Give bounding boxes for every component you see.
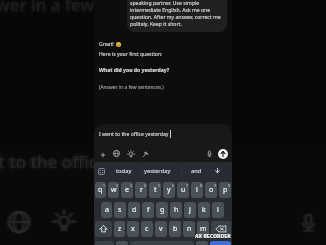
staticText: (Answer in a few sentences.) [99, 84, 164, 91]
button[interactable]: u [177, 182, 189, 198]
button[interactable]: z [114, 221, 125, 237]
button[interactable]: p [219, 182, 231, 198]
staticText: 9 [214, 183, 216, 188]
button[interactable]: and [191, 166, 202, 175]
staticText: 7 [186, 183, 188, 188]
staticText: What did you do yesterday? [99, 67, 170, 74]
button[interactable]: Send [218, 149, 228, 159]
button[interactable]: t [149, 182, 161, 198]
staticText: Here is your first question: [99, 51, 163, 58]
button[interactable]: w [108, 182, 119, 198]
staticText: 5 [158, 183, 160, 188]
button[interactable]: x [127, 221, 139, 237]
staticText: t [154, 185, 157, 195]
button[interactable]: o [205, 182, 217, 198]
staticText: 1 [103, 183, 105, 188]
staticText: I went to the office yesterday [99, 131, 169, 138]
button[interactable]: m [197, 221, 209, 237]
staticText: f [147, 205, 150, 215]
staticText: v [159, 224, 163, 234]
staticText: u [181, 185, 186, 195]
button[interactable]: s [114, 202, 126, 218]
staticText: t to the offic [0, 150, 100, 173]
button[interactable]: Attach [142, 151, 149, 158]
staticText: m [200, 224, 207, 234]
button[interactable]: l [212, 202, 224, 218]
button[interactable]: h [170, 202, 182, 218]
button[interactable]: Voice input [206, 150, 213, 157]
staticText: g [160, 205, 165, 215]
button[interactable]: Backspace [211, 221, 231, 237]
staticText: wer in a few [0, 0, 93, 16]
button[interactable]: Shift [95, 221, 112, 237]
staticText: p [223, 185, 228, 195]
button[interactable]: y [163, 182, 175, 198]
staticText: n [187, 224, 192, 234]
staticText: Great! [99, 41, 114, 48]
button[interactable]: j [184, 202, 196, 218]
staticText: 2 [116, 183, 118, 188]
staticText: d [132, 205, 137, 215]
button[interactable]: . [196, 241, 208, 245]
staticText: AX RECORDER [195, 232, 231, 239]
button[interactable]: v [155, 221, 167, 237]
button[interactable]: k [198, 202, 210, 218]
button[interactable]: yesterday [144, 166, 171, 175]
button[interactable]: Keyboard settings [98, 168, 105, 175]
staticText: q [98, 185, 103, 195]
button[interactable]: a [101, 202, 112, 218]
staticText: s [118, 205, 122, 215]
button[interactable]: Enter [210, 241, 231, 245]
staticText: k [202, 205, 206, 215]
button[interactable]: i [191, 182, 203, 198]
staticText: wer in a few [0, 0, 95, 15]
button[interactable]: today [116, 166, 132, 175]
button[interactable]: Add [100, 152, 106, 158]
staticText: 4 [144, 183, 146, 188]
staticText: t to the offic [0, 151, 98, 174]
button[interactable]: g [156, 202, 168, 218]
staticText: wer in a few [0, 0, 97, 16]
button[interactable]: Symbols [95, 241, 114, 245]
button[interactable]: e [121, 182, 133, 198]
staticText: 8 [200, 183, 202, 188]
staticText: today [116, 167, 132, 175]
staticText: t to the offic [0, 150, 98, 173]
staticText: t to the offic [0, 150, 96, 173]
button[interactable]: c [141, 221, 153, 237]
button[interactable]: n [183, 221, 195, 237]
staticText: yesterday [144, 167, 171, 175]
button[interactable]: r [135, 182, 147, 198]
staticText: a [105, 205, 109, 215]
staticText: y [167, 185, 171, 195]
staticText: 6 [172, 183, 174, 188]
staticText: and [191, 167, 202, 175]
button[interactable]: b [169, 221, 181, 237]
staticText: r [140, 185, 143, 195]
staticText: wer in a few [0, 0, 95, 16]
staticText: wer in a few [0, 0, 94, 16]
staticText: 0 [228, 183, 230, 188]
button[interactable]: q [95, 182, 106, 198]
staticText: b [173, 224, 178, 234]
staticText: wer in a few [0, 0, 95, 17]
button[interactable]: Ideas [127, 150, 135, 158]
staticText: x [131, 224, 135, 234]
button[interactable]: d [128, 202, 140, 218]
staticText: z [118, 224, 122, 234]
staticText: t to the offic [0, 150, 99, 173]
button[interactable]: speaking partner. Use simple intermediat… [130, 0, 224, 28]
staticText: h [174, 205, 179, 215]
staticText: t to the offic [0, 150, 95, 173]
button[interactable]: f [142, 202, 154, 218]
button[interactable]: Search the web [113, 150, 120, 157]
button[interactable]: , [116, 241, 128, 245]
staticText: t to the offic [0, 149, 98, 172]
staticText: wer in a few [0, 0, 95, 18]
staticText: t to the offic [0, 148, 98, 171]
staticText: w [111, 185, 117, 195]
button[interactable]: Expand suggestions [214, 167, 221, 174]
